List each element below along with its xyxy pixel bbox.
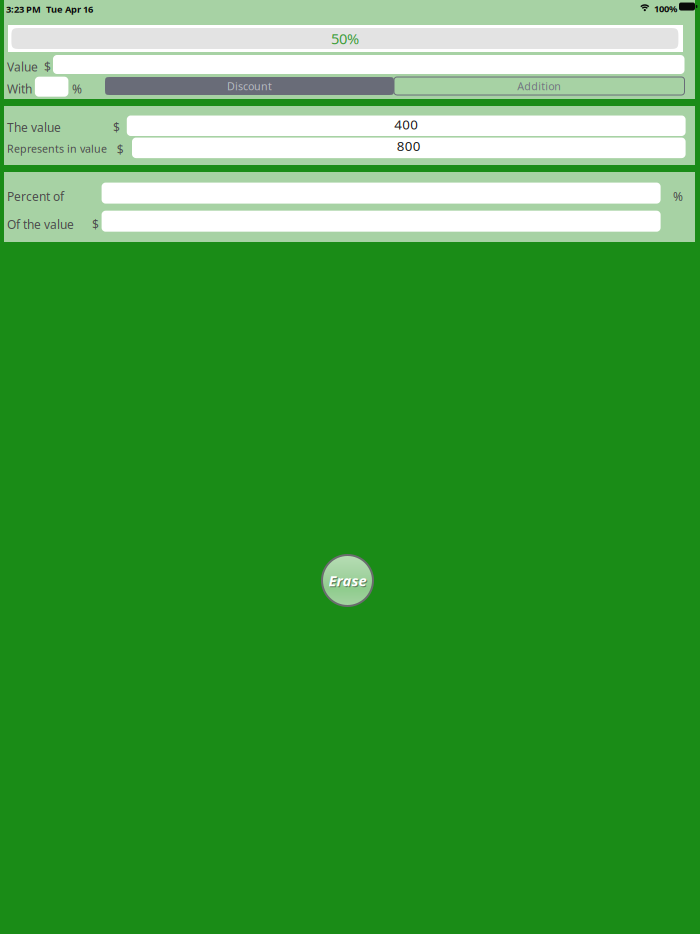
staticText: $ xyxy=(44,59,51,75)
staticText: 3:23 PM xyxy=(6,3,41,15)
staticText: $ xyxy=(117,142,124,158)
staticText: Represents in value xyxy=(7,141,107,156)
button[interactable]: Addition xyxy=(394,77,684,95)
staticText: Erase xyxy=(328,571,366,590)
staticText: Discount xyxy=(227,79,272,93)
staticText: The value xyxy=(7,119,61,135)
staticText: 50% xyxy=(331,29,359,48)
staticText: Value xyxy=(7,59,38,75)
button[interactable]: Discount xyxy=(105,77,394,95)
staticText: % xyxy=(673,188,683,204)
staticText: With xyxy=(7,81,32,97)
button[interactable]: Erase xyxy=(322,555,373,606)
staticText: 400 xyxy=(394,115,418,133)
staticText: Percent of xyxy=(7,188,64,204)
staticText: 100% xyxy=(654,2,677,15)
staticText: Tue Apr 16 xyxy=(46,3,93,15)
staticText: Addition xyxy=(517,79,561,93)
staticText: $ xyxy=(92,216,99,232)
staticText: 800 xyxy=(397,137,421,155)
staticText: $ xyxy=(113,119,120,135)
staticText: % xyxy=(72,81,82,97)
staticText: Erase xyxy=(329,572,367,591)
staticText: Of the value xyxy=(7,216,74,232)
